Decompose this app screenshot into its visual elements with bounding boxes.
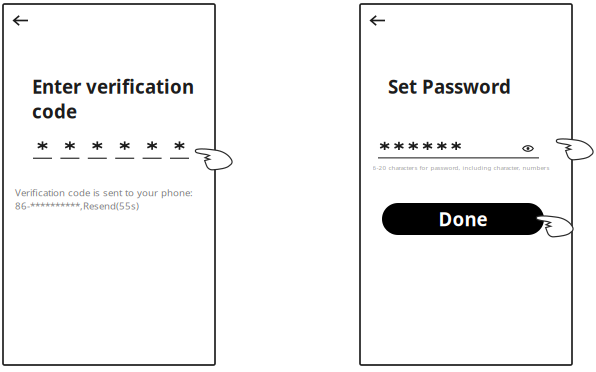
button[interactable]: Verification code digit: [170, 141, 189, 159]
button[interactable]: Back: [3, 6, 37, 34]
staticText: Enter verification code: [32, 74, 194, 124]
button[interactable]: Verification code digit: [88, 141, 107, 159]
staticText: Verification code is sent to your phone:…: [15, 186, 193, 212]
button[interactable]: Done: [382, 203, 544, 235]
staticText: 6-20 characters for password, including …: [372, 163, 549, 172]
button[interactable]: Back: [360, 6, 394, 34]
button[interactable]: Verification code digit: [143, 141, 162, 159]
button[interactable]: Verification code digit: [60, 141, 79, 159]
button[interactable]: Verification code digit: [115, 141, 134, 159]
staticText: Set Password: [388, 74, 511, 99]
button[interactable]: Show password: [517, 139, 539, 157]
button[interactable]: Verification code digit: [33, 141, 52, 159]
staticText: Done: [438, 207, 487, 231]
button[interactable]: Password: [378, 139, 539, 159]
